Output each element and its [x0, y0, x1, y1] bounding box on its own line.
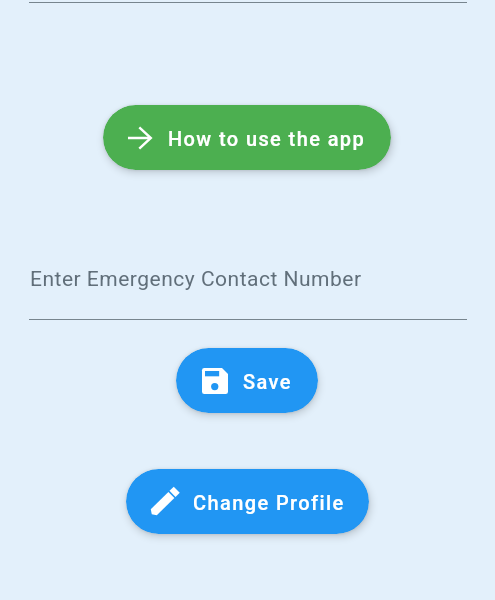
staticText: Save	[243, 370, 292, 393]
button[interactable]: Save	[176, 348, 318, 413]
staticText: Change Profile	[193, 491, 345, 514]
other: Forward	[128, 126, 152, 150]
staticText: Enter Emergency Contact Number	[30, 267, 362, 292]
button[interactable]: Change Profile	[126, 469, 369, 534]
staticText: How to use the app	[168, 127, 366, 150]
button[interactable]: Forward	[103, 105, 391, 170]
